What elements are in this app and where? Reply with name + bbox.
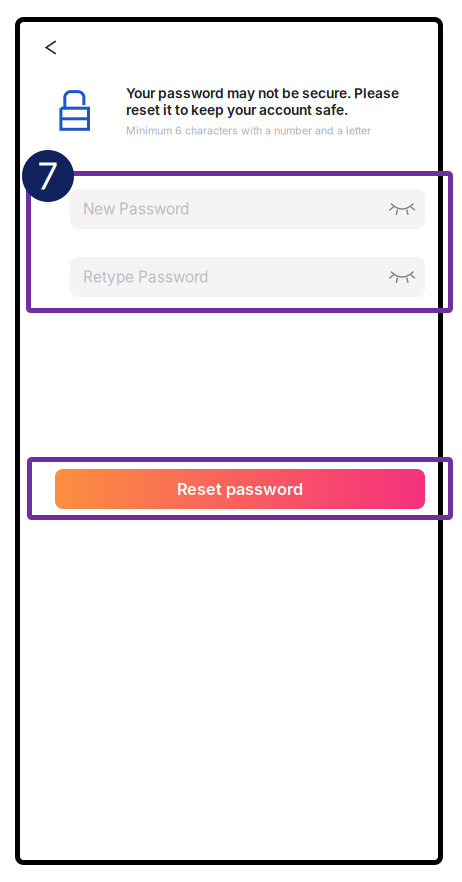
staticText: Your password may not be secure. Please … [126,85,399,118]
button[interactable]: New Password [70,189,425,229]
staticText: New Password [83,200,189,218]
staticText: Retype Password [83,268,208,286]
button[interactable]: Back [33,31,69,63]
button[interactable]: Retype Password [70,257,425,297]
staticText: 7 [38,153,58,199]
button[interactable]: Reset password [55,469,425,509]
staticText: Minimum 6 characters with a number and a… [126,124,371,137]
staticText: Reset password [177,479,303,499]
